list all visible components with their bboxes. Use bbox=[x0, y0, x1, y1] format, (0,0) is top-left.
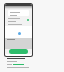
button[interactable] bbox=[8, 10, 29, 16]
button[interactable] bbox=[9, 49, 28, 54]
